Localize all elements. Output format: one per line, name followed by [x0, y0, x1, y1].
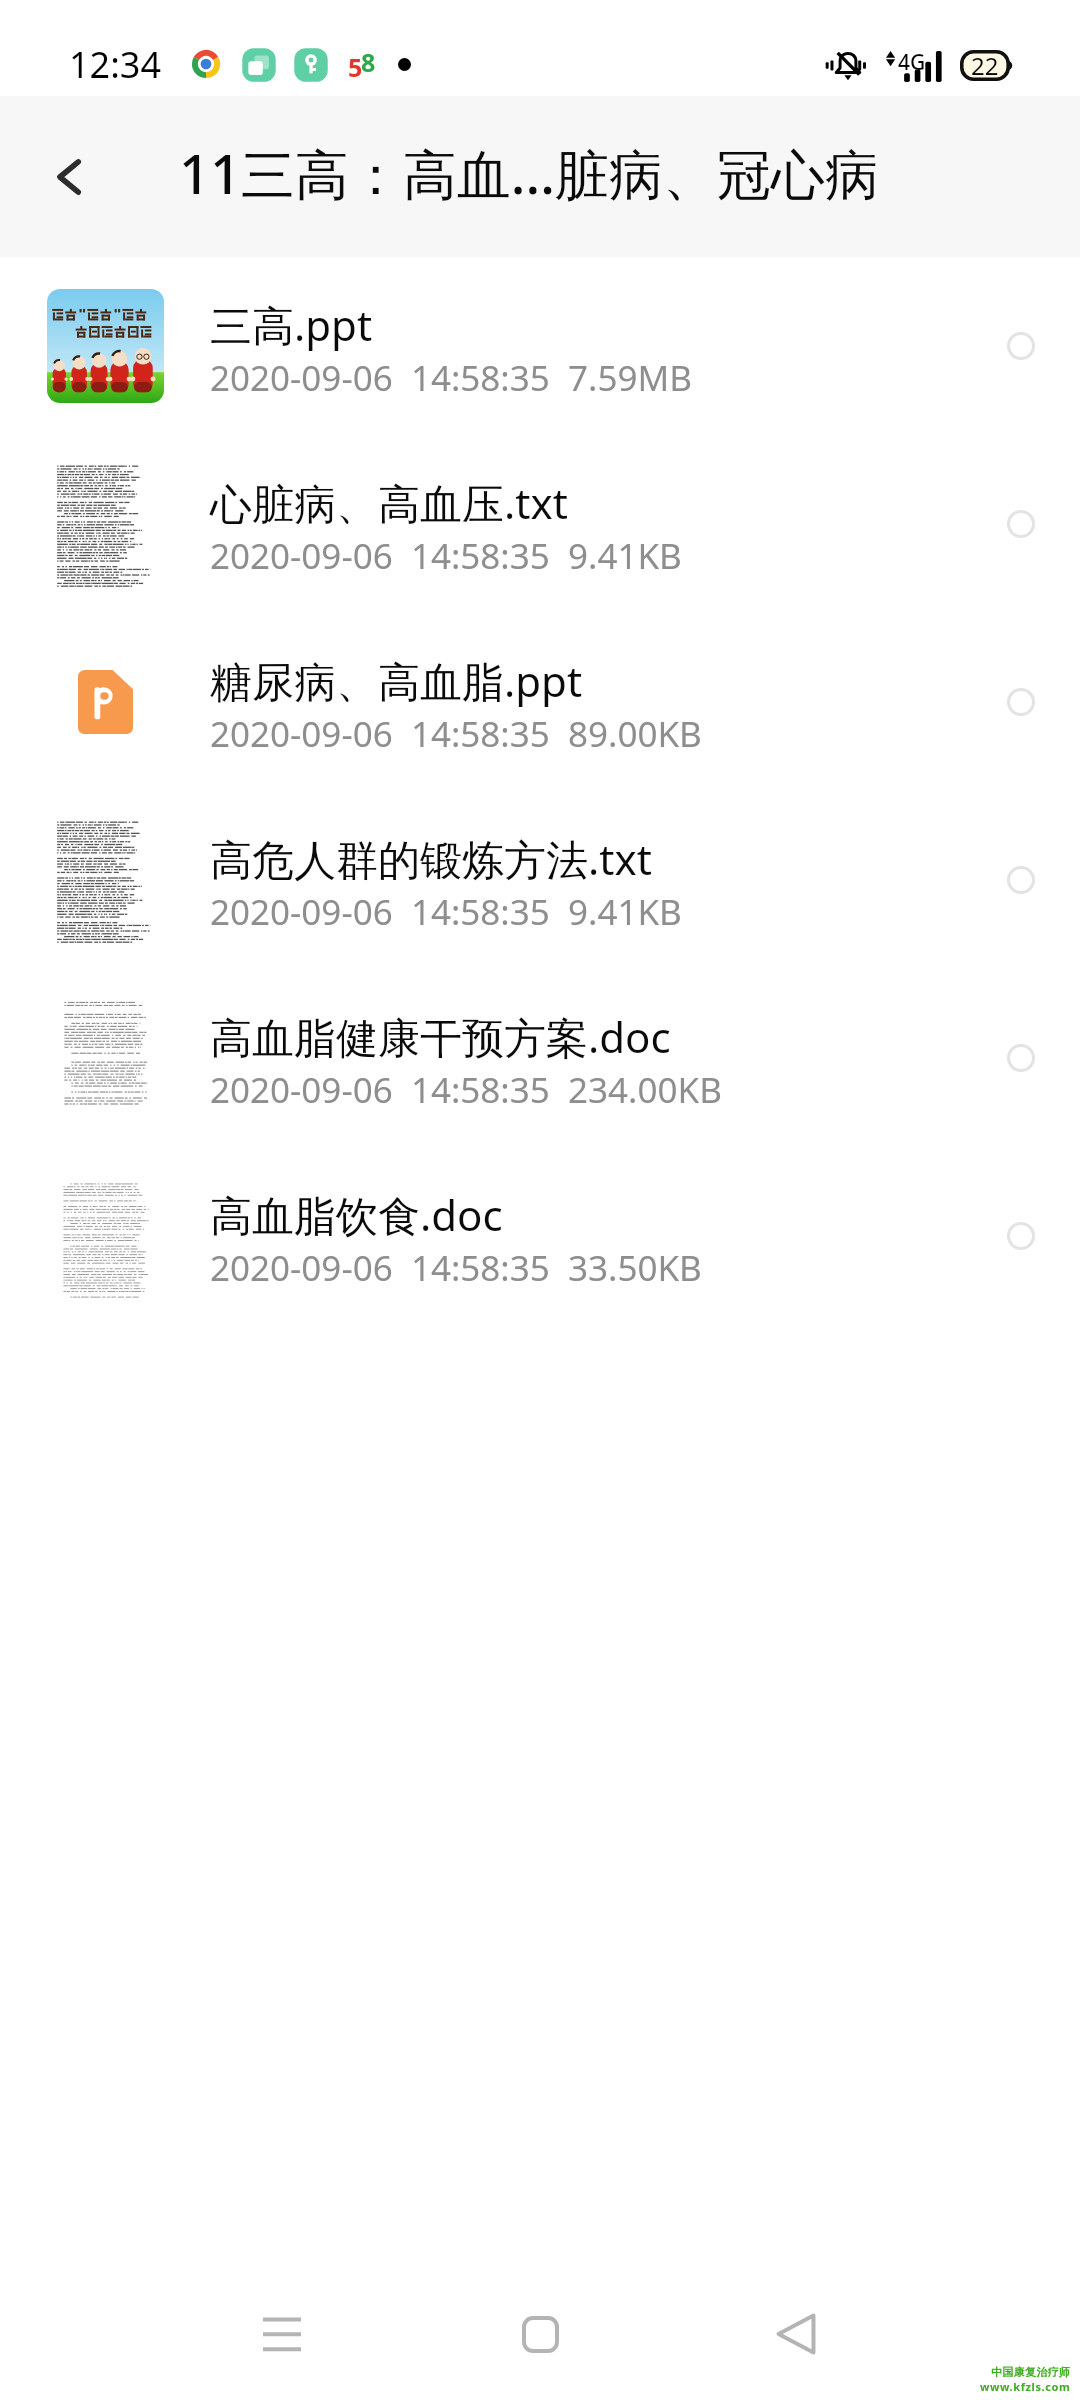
staticText: 2020-09-06 14:58:35 89.00KB	[210, 710, 702, 758]
staticText: 高危人群的锻炼方法.txt	[210, 830, 652, 887]
button[interactable]: Back	[741, 2279, 851, 2389]
staticText: 22	[971, 49, 999, 80]
staticText: 5	[348, 50, 363, 84]
button[interactable]: 糖尿病、高血脂.ppt	[0, 613, 1080, 791]
staticText: 糖尿病、高血脂.ppt	[210, 652, 583, 709]
button[interactable]: 三高.ppt	[0, 257, 1080, 435]
staticText: 4G	[898, 48, 926, 77]
staticText: 2020-09-06 14:58:35 234.00KB	[210, 1066, 722, 1114]
button[interactable]: 高血脂健康干预方案.doc	[0, 969, 1080, 1147]
staticText: 8	[361, 45, 376, 79]
button[interactable]: Recent apps	[227, 2279, 337, 2389]
staticText: 三高.ppt	[210, 296, 373, 353]
button[interactable]: 心脏病、高血压.txt	[0, 435, 1080, 613]
staticText: 高血脂健康干预方案.doc	[210, 1008, 671, 1065]
button[interactable]: Select file	[981, 484, 1061, 564]
staticText: 心脏病、高血压.txt	[210, 474, 568, 531]
button[interactable]: Select file	[981, 662, 1061, 742]
staticText: 2020-09-06 14:58:35 9.41KB	[210, 888, 682, 936]
staticText: 高血脂饮食.doc	[210, 1186, 503, 1243]
button[interactable]: 高血脂饮食.doc	[0, 1147, 1080, 1325]
staticText: 中国康复治疗师	[991, 2365, 1071, 2379]
button[interactable]: Select file	[981, 1196, 1061, 1276]
staticText: 2020-09-06 14:58:35 33.50KB	[210, 1244, 702, 1292]
staticText: 12:34	[69, 40, 162, 89]
staticText: 2020-09-06 14:58:35 7.59MB	[210, 354, 692, 402]
button[interactable]: Select file	[981, 1018, 1061, 1098]
button[interactable]: 高危人群的锻炼方法.txt	[0, 791, 1080, 969]
button[interactable]: Home	[485, 2279, 595, 2389]
staticText: www.kfzls.com	[980, 2379, 1071, 2394]
button[interactable]: Select file	[981, 306, 1061, 386]
staticText: 2020-09-06 14:58:35 9.41KB	[210, 532, 682, 580]
staticText: 11三高：高血...脏病、冠心病	[179, 136, 879, 210]
button[interactable]: Back	[28, 135, 112, 219]
button[interactable]: Select file	[981, 840, 1061, 920]
